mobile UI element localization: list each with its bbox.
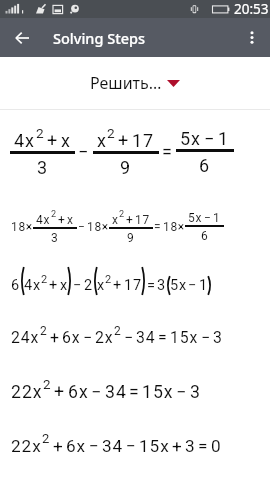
- staticText: −: [176, 382, 188, 403]
- staticText: 1: [199, 277, 208, 294]
- staticText: 9: [127, 231, 135, 245]
- staticText: 6x: [62, 328, 81, 347]
- staticText: 3: [157, 277, 166, 294]
- staticText: 17: [124, 277, 142, 294]
- staticText: 9: [120, 157, 132, 178]
- staticText: 5x: [170, 277, 187, 294]
- staticText: −: [124, 328, 134, 347]
- staticText: 2: [43, 377, 52, 393]
- staticText: 3: [185, 436, 196, 456]
- staticText: 22x: [11, 382, 43, 403]
- staticText: 17: [135, 213, 150, 227]
- staticText: −: [78, 220, 86, 234]
- staticText: 6: [11, 277, 20, 294]
- staticText: =: [154, 220, 162, 234]
- staticText: x: [97, 130, 107, 151]
- staticText: 17: [132, 130, 155, 151]
- staticText: 34: [136, 328, 156, 347]
- staticText: +: [126, 213, 134, 227]
- staticText: 6: [201, 229, 209, 243]
- staticText: 24x: [11, 328, 40, 347]
- staticText: +: [113, 277, 123, 294]
- staticText: 3: [51, 231, 59, 245]
- staticText: −: [78, 141, 90, 162]
- staticText: 2: [84, 277, 93, 294]
- staticText: 4x: [14, 130, 36, 151]
- staticText: 6x: [68, 382, 89, 403]
- staticText: 2: [51, 209, 57, 220]
- staticText: −: [91, 382, 103, 403]
- staticText: =: [147, 277, 156, 294]
- staticText: 15x: [170, 328, 199, 347]
- staticText: Solving Steps: [53, 28, 146, 48]
- button[interactable]: Back: [6, 22, 38, 54]
- staticText: 3: [37, 157, 49, 178]
- staticText: 1: [218, 128, 230, 149]
- staticText: 34: [105, 382, 127, 403]
- staticText: +: [54, 382, 66, 403]
- staticText: 5x: [180, 128, 202, 149]
- staticText: −: [204, 211, 212, 225]
- staticText: 15x: [142, 382, 174, 403]
- staticText: +: [172, 436, 183, 456]
- staticText: +: [47, 130, 59, 151]
- button[interactable]: Решить…: [82, 66, 188, 100]
- staticText: x: [60, 277, 68, 294]
- staticText: 2: [40, 324, 48, 338]
- staticText: −: [89, 436, 100, 456]
- staticText: x: [112, 213, 119, 227]
- staticText: 2: [36, 125, 45, 141]
- staticText: +: [118, 130, 130, 151]
- staticText: 6x: [66, 436, 87, 456]
- staticText: 2: [42, 431, 51, 446]
- staticText: −: [188, 277, 198, 294]
- staticText: =: [162, 141, 173, 162]
- staticText: +: [49, 277, 59, 294]
- staticText: −: [83, 328, 93, 347]
- staticText: 18×: [11, 220, 33, 234]
- staticText: 4x: [36, 213, 51, 227]
- staticText: 2: [41, 273, 48, 286]
- staticText: Решить…: [90, 72, 162, 94]
- staticText: 4x: [24, 277, 41, 294]
- staticText: 6: [199, 155, 211, 176]
- staticText: 18×: [163, 220, 185, 234]
- staticText: x: [97, 277, 105, 294]
- staticText: 2: [107, 125, 116, 141]
- staticText: =: [158, 328, 168, 347]
- staticText: 5x: [188, 211, 203, 225]
- staticText: x: [67, 213, 74, 227]
- staticText: +: [58, 213, 66, 227]
- staticText: 22x: [11, 436, 42, 456]
- staticText: +: [53, 436, 64, 456]
- staticText: 1: [213, 211, 221, 225]
- staticText: 34: [102, 436, 124, 456]
- staticText: −: [73, 277, 83, 294]
- staticText: 0: [211, 436, 222, 456]
- button[interactable]: More options: [234, 20, 270, 56]
- staticText: 2x: [95, 328, 114, 347]
- staticText: 20:53: [234, 0, 269, 18]
- staticText: 18×: [87, 220, 109, 234]
- staticText: 2: [119, 209, 125, 220]
- staticText: +: [50, 328, 60, 347]
- staticText: x: [61, 130, 71, 151]
- staticText: 2: [114, 324, 122, 338]
- staticText: =: [129, 382, 140, 403]
- staticText: 15x: [139, 436, 170, 456]
- staticText: −: [126, 436, 137, 456]
- staticText: 3: [213, 328, 223, 347]
- staticText: 2: [105, 273, 112, 286]
- staticText: −: [201, 328, 211, 347]
- staticText: −: [204, 128, 216, 149]
- staticText: 3: [190, 382, 201, 403]
- staticText: =: [198, 436, 209, 456]
